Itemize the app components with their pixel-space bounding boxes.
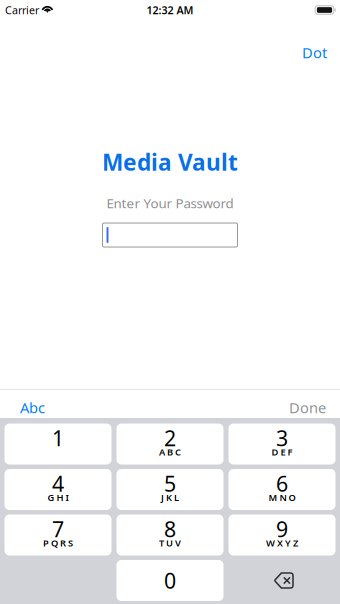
staticText: Abc <box>20 398 45 417</box>
staticText: WXYZ <box>266 537 298 549</box>
button[interactable]: Abc <box>12 394 53 421</box>
button[interactable]: 9 <box>228 514 335 555</box>
staticText: 9 <box>276 515 288 543</box>
staticText: TUV <box>159 537 181 549</box>
staticText: 12:32 AM <box>146 3 193 17</box>
staticText: 7 <box>52 515 64 543</box>
button[interactable]: Done <box>281 394 334 421</box>
staticText: JKL <box>161 491 179 504</box>
button[interactable]: 0 <box>116 560 223 601</box>
staticText: DEF <box>271 446 292 458</box>
staticText: 5 <box>164 469 176 498</box>
staticText: 1 <box>52 424 64 452</box>
button[interactable]: 3 <box>228 423 335 464</box>
button[interactable]: 6 <box>228 469 335 510</box>
button[interactable]: 5 <box>116 469 223 510</box>
staticText: 2 <box>164 424 176 452</box>
staticText: 3 <box>276 424 288 452</box>
staticText: 0 <box>164 566 176 595</box>
staticText: MNO <box>268 491 295 504</box>
staticText: 8 <box>164 515 176 543</box>
button[interactable]: 1 <box>4 423 111 464</box>
staticText: Enter Your Password <box>106 194 233 212</box>
staticText: ABC <box>159 446 181 458</box>
staticText: Media Vault <box>102 147 238 177</box>
staticText: 4 <box>52 469 64 498</box>
button[interactable]: 8 <box>116 514 223 555</box>
staticText: Carrier <box>5 3 39 17</box>
button[interactable]: 7 <box>4 514 111 555</box>
staticText: Dot <box>302 43 327 62</box>
staticText: PQRS <box>43 537 73 549</box>
button[interactable]: 2 <box>116 423 223 464</box>
button[interactable]: 4 <box>4 469 111 510</box>
staticText: 6 <box>276 469 288 498</box>
staticText: GHI <box>47 491 68 504</box>
staticText: Done <box>289 398 326 417</box>
button[interactable]: Dot <box>289 20 340 67</box>
button[interactable]: Delete <box>228 560 335 601</box>
